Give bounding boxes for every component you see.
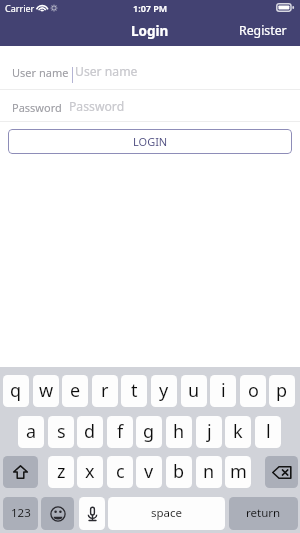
button[interactable]: e (62, 375, 88, 407)
button[interactable]: t (121, 375, 147, 407)
staticText: i (221, 378, 226, 403)
staticText: 1:07 PM (133, 2, 168, 14)
button[interactable]: f (107, 416, 133, 448)
staticText: LOGIN (133, 134, 168, 149)
button[interactable]: u (181, 375, 207, 407)
button[interactable]: space (108, 497, 225, 530)
button[interactable]: g (136, 416, 162, 448)
staticText: z (57, 459, 66, 484)
button[interactable]: x (77, 456, 103, 488)
staticText: Password (12, 100, 62, 115)
staticText: t (131, 378, 138, 403)
button[interactable]: w (33, 375, 59, 407)
staticText: g (143, 419, 155, 444)
button[interactable]: q (3, 375, 29, 407)
staticText: v (144, 459, 154, 484)
staticText: u (188, 378, 200, 403)
button[interactable]: m (225, 456, 251, 488)
button[interactable]: l (255, 416, 281, 448)
button[interactable]: k (225, 416, 251, 448)
button[interactable]: Emoji (41, 497, 74, 530)
button[interactable]: r (92, 375, 118, 407)
staticText: j (207, 419, 212, 444)
staticText: c (116, 459, 125, 484)
button[interactable]: Shift (3, 456, 38, 488)
button[interactable]: Register (226, 15, 300, 46)
button[interactable]: d (77, 416, 103, 448)
staticText: n (203, 459, 215, 484)
staticText: m (230, 459, 247, 484)
staticText: f (117, 419, 124, 444)
staticText: w (39, 378, 54, 403)
button[interactable]: v (136, 456, 162, 488)
staticText: 123 (11, 505, 31, 521)
button[interactable]: s (48, 416, 74, 448)
staticText: d (84, 419, 96, 444)
staticText: h (173, 419, 185, 444)
button[interactable]: Backspace (265, 456, 298, 488)
button[interactable]: Dictate (79, 497, 105, 530)
staticText: e (70, 378, 81, 403)
staticText: y (159, 378, 169, 403)
staticText: Register (239, 22, 287, 39)
button[interactable]: h (166, 416, 192, 448)
button[interactable]: i (210, 375, 236, 407)
button[interactable]: 123 (3, 497, 38, 530)
staticText: b (173, 459, 185, 484)
button[interactable]: a (18, 416, 44, 448)
button[interactable]: c (107, 456, 133, 488)
button[interactable]: return (229, 497, 298, 530)
staticText: l (266, 419, 271, 444)
staticText: s (57, 419, 66, 444)
staticText: Login (131, 22, 169, 40)
staticText: q (10, 378, 22, 403)
staticText: Password (69, 98, 125, 115)
button[interactable]: LOGIN (8, 129, 292, 154)
staticText: space (151, 505, 183, 521)
staticText: o (248, 378, 259, 403)
button[interactable]: z (48, 456, 74, 488)
button[interactable]: User name (0, 46, 300, 90)
staticText: p (276, 378, 288, 403)
staticText: User name (75, 63, 138, 80)
button[interactable]: o (240, 375, 266, 407)
button[interactable]: n (196, 456, 222, 488)
staticText: a (26, 419, 37, 444)
staticText: k (233, 419, 243, 444)
button[interactable]: b (166, 456, 192, 488)
staticText: Carrier (5, 2, 35, 14)
staticText: User name (12, 65, 69, 80)
button[interactable]: p (269, 375, 295, 407)
button[interactable]: Password (0, 90, 300, 122)
button[interactable]: j (196, 416, 222, 448)
staticText: x (85, 459, 95, 484)
button[interactable]: y (151, 375, 177, 407)
staticText: r (101, 378, 109, 403)
staticText: return (246, 505, 281, 521)
